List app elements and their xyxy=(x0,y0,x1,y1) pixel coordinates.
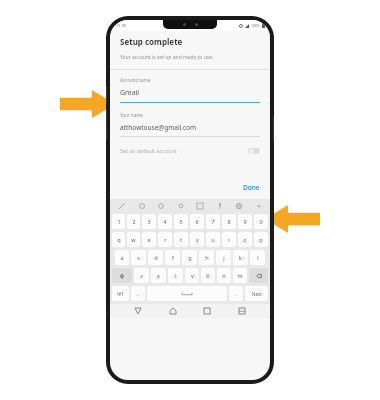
button[interactable]: f xyxy=(165,250,180,265)
staticText: k xyxy=(239,254,242,261)
staticText: Account name xyxy=(120,77,151,83)
button[interactable]: 6 xyxy=(190,214,204,229)
staticText: f xyxy=(172,254,174,261)
staticText: Your name xyxy=(120,112,143,118)
staticText: !#1 xyxy=(117,291,124,297)
button[interactable]: Search xyxy=(175,200,186,211)
staticText: h xyxy=(205,254,209,261)
button[interactable]: . xyxy=(229,286,243,301)
button[interactable]: Back xyxy=(131,304,145,318)
button[interactable]: b xyxy=(201,268,215,283)
staticText: y xyxy=(196,236,199,243)
button[interactable]: atthowtouse@gmail.com xyxy=(110,123,270,137)
staticText: u xyxy=(211,236,215,243)
staticText: Next xyxy=(252,291,262,297)
button[interactable]: Set as default account xyxy=(110,147,270,154)
button[interactable]: Hide keyboard xyxy=(235,304,249,318)
staticText: e xyxy=(147,236,151,243)
staticText: z xyxy=(140,272,143,279)
button[interactable]: Home xyxy=(166,304,180,318)
staticText: q xyxy=(117,236,121,243)
button[interactable]: j xyxy=(216,250,231,265)
button[interactable]: y xyxy=(190,232,204,247)
staticText: Set as default account xyxy=(120,147,248,154)
staticText: 2 xyxy=(132,218,136,225)
button[interactable]: r xyxy=(158,232,172,247)
button[interactable]: v xyxy=(185,268,199,283)
button[interactable]: Done xyxy=(233,180,270,195)
button[interactable]: 3 xyxy=(142,214,156,229)
staticText: p xyxy=(259,236,263,243)
button[interactable]: Sticker xyxy=(116,200,127,211)
staticText: b xyxy=(206,272,210,279)
button[interactable]: 2 xyxy=(127,214,140,229)
staticText: j xyxy=(223,254,225,261)
button[interactable]: Voice input xyxy=(214,200,225,211)
staticText: s xyxy=(137,254,140,261)
staticText: atthowtouse@gmail.com xyxy=(120,123,197,132)
button[interactable]: 5 xyxy=(174,214,188,229)
staticText: Gmail xyxy=(120,88,140,98)
button[interactable]: q xyxy=(112,232,125,247)
button[interactable]: Backspace xyxy=(249,268,268,283)
staticText: o xyxy=(243,236,247,243)
button[interactable]: u xyxy=(206,232,220,247)
staticText: 1 xyxy=(117,218,121,225)
button[interactable]: g xyxy=(182,250,197,265)
button[interactable]: d xyxy=(148,250,163,265)
staticText: l xyxy=(257,254,259,261)
button[interactable]: l xyxy=(250,250,265,265)
button[interactable]: 9 xyxy=(238,214,252,229)
button[interactable]: p xyxy=(254,232,268,247)
staticText: w xyxy=(131,236,136,243)
button[interactable]: , xyxy=(131,286,145,301)
staticText: g xyxy=(188,254,192,261)
button[interactable]: !#1 xyxy=(112,286,129,301)
button[interactable]: x xyxy=(151,268,166,283)
button[interactable]: 1 xyxy=(112,214,125,229)
button[interactable]: a xyxy=(115,250,129,265)
button[interactable]: More xyxy=(253,200,264,211)
button[interactable]: n xyxy=(217,268,231,283)
button[interactable]: s xyxy=(131,250,146,265)
staticText: i xyxy=(228,236,230,243)
staticText: n xyxy=(222,272,226,279)
staticText: t xyxy=(180,236,182,243)
button[interactable]: c xyxy=(168,268,183,283)
button[interactable]: h xyxy=(199,250,214,265)
button[interactable]: 8 xyxy=(222,214,236,229)
button[interactable]: 4 xyxy=(158,214,172,229)
staticText: c xyxy=(174,272,177,279)
staticText: a xyxy=(120,254,124,261)
staticText: 100% xyxy=(251,23,260,28)
button[interactable]: Recents xyxy=(200,304,214,318)
button[interactable]: Space xyxy=(147,286,227,301)
button[interactable]: m xyxy=(233,268,247,283)
button[interactable]: e xyxy=(142,232,156,247)
button[interactable]: Next xyxy=(245,286,268,301)
staticText: x xyxy=(157,272,160,279)
button[interactable]: t xyxy=(174,232,188,247)
staticText: . xyxy=(235,290,237,297)
staticText: 4 xyxy=(163,218,167,225)
button[interactable]: w xyxy=(127,232,140,247)
button[interactable]: k xyxy=(233,250,248,265)
staticText: d xyxy=(154,254,158,261)
button[interactable]: GIF xyxy=(155,200,166,211)
button[interactable]: Translate xyxy=(194,200,205,211)
staticText: 11:00 xyxy=(116,23,127,28)
button[interactable]: 0 xyxy=(254,214,268,229)
staticText: Your account is set up and ready to use. xyxy=(120,54,214,61)
button[interactable]: Shift xyxy=(112,268,132,283)
staticText: 3 xyxy=(147,218,151,225)
staticText: v xyxy=(191,272,194,279)
button[interactable]: o xyxy=(238,232,252,247)
staticText: 8 xyxy=(227,218,231,225)
button[interactable]: Gmail xyxy=(110,88,270,103)
button[interactable]: z xyxy=(134,268,149,283)
button[interactable]: Emoji xyxy=(136,200,147,211)
staticText: Setup complete xyxy=(120,36,183,47)
button[interactable]: Settings xyxy=(233,200,244,211)
button[interactable]: i xyxy=(222,232,236,247)
button[interactable]: 7 xyxy=(206,214,220,229)
